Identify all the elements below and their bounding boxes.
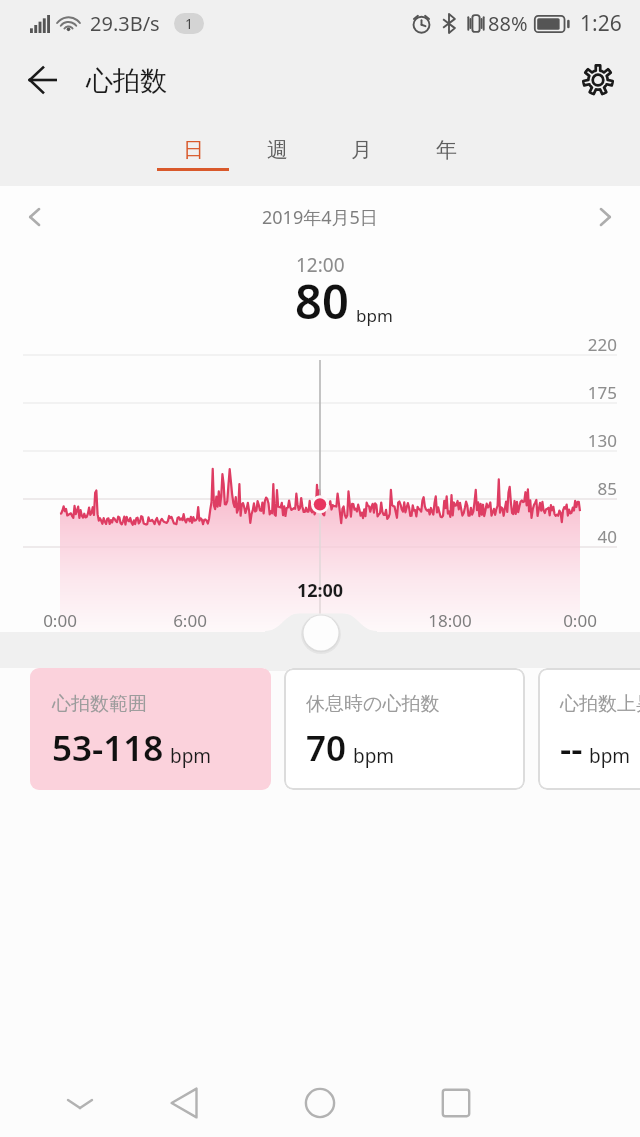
staticText: 月: [351, 137, 372, 163]
button[interactable]: 心拍数上昇: [538, 668, 640, 790]
button[interactable]: 日: [151, 110, 235, 186]
staticText: 2019年4月5日: [262, 205, 378, 230]
staticText: 12:00: [280, 578, 360, 603]
button[interactable]: 心拍数範囲: [30, 668, 271, 790]
button[interactable]: Settings: [570, 52, 626, 108]
staticText: 0:00: [20, 609, 100, 632]
staticText: 40: [0, 525, 617, 548]
button[interactable]: Back: [14, 52, 70, 108]
staticText: 心拍数上昇: [560, 692, 640, 716]
staticText: 日: [183, 137, 204, 163]
staticText: 0:00: [540, 609, 620, 632]
staticText: 週: [267, 137, 288, 163]
button[interactable]: Recents: [420, 1060, 492, 1137]
staticText: bpm: [353, 743, 395, 769]
button[interactable]: Next day: [582, 194, 628, 240]
button[interactable]: 年: [404, 110, 488, 186]
staticText: 85: [0, 477, 617, 500]
staticText: 88%: [488, 10, 528, 37]
staticText: --: [560, 724, 583, 772]
staticText: 心拍数: [86, 64, 167, 98]
staticText: bpm: [589, 743, 631, 769]
staticText: 休息時の心拍数: [306, 692, 440, 716]
staticText: 29.3B/s: [90, 10, 160, 37]
staticText: bpm: [170, 743, 212, 769]
button[interactable]: 週: [235, 110, 319, 186]
staticText: 18:00: [410, 609, 490, 632]
button[interactable]: Scrub: [303, 615, 339, 651]
staticText: 1:26: [580, 9, 622, 38]
button[interactable]: Hide keyboard: [44, 1060, 116, 1137]
button[interactable]: Previous day: [12, 194, 58, 240]
staticText: 6:00: [150, 609, 230, 632]
staticText: 心拍数範囲: [52, 692, 147, 716]
staticText: 175: [0, 381, 617, 404]
button[interactable]: 休息時の心拍数: [284, 668, 525, 790]
button[interactable]: Home: [284, 1060, 356, 1137]
staticText: 70: [306, 724, 347, 772]
button[interactable]: Back: [147, 1060, 219, 1137]
staticText: 年: [436, 137, 457, 163]
staticText: 80: [295, 269, 349, 333]
button[interactable]: 月: [319, 110, 403, 186]
staticText: 1: [185, 14, 194, 33]
staticText: 53-118: [52, 724, 164, 772]
staticText: 130: [0, 429, 617, 452]
staticText: bpm: [356, 304, 393, 327]
staticText: 220: [0, 333, 617, 356]
staticText: 12:00: [296, 252, 345, 278]
